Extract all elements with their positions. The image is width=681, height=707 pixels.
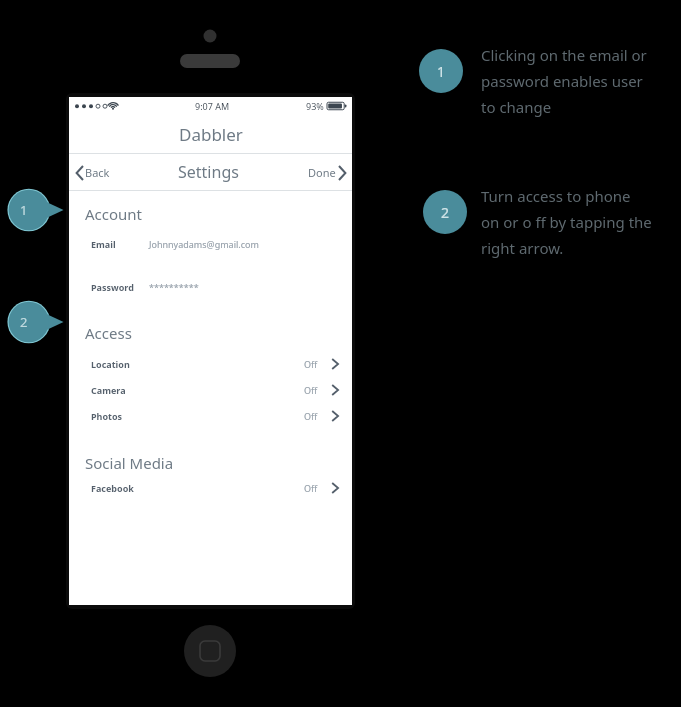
button[interactable]: Back — [79, 161, 116, 184]
button[interactable]: Facebook — [69, 475, 352, 501]
staticText: 1 — [437, 62, 446, 81]
staticText: Account — [85, 204, 143, 224]
staticText: 2 — [441, 203, 450, 222]
staticText: 9:07 AM — [195, 100, 230, 112]
button[interactable]: Password — [69, 279, 352, 295]
staticText: password enables user — [481, 71, 643, 91]
staticText: Settings — [178, 161, 239, 183]
button[interactable]: 1 — [419, 49, 463, 93]
button[interactable]: Location — [69, 351, 352, 377]
staticText: 1 — [20, 201, 28, 219]
staticText: right arrow. — [481, 238, 564, 258]
staticText: on or o ff by tapping the — [481, 212, 652, 232]
staticText: Password — [91, 281, 134, 293]
button[interactable]: Camera — [69, 377, 352, 403]
staticText: Clicking on the email or — [481, 45, 647, 65]
staticText: Off — [304, 384, 318, 396]
staticText: Social Media — [85, 453, 174, 473]
staticText: Location — [91, 358, 130, 370]
staticText: Email — [91, 238, 116, 250]
staticText: Off — [304, 410, 318, 422]
staticText: Off — [304, 482, 318, 494]
staticText: 93% — [306, 100, 324, 112]
button[interactable]: Done — [302, 161, 342, 184]
staticText: Off — [304, 358, 318, 370]
staticText: Facebook — [91, 482, 134, 494]
staticText: to change — [481, 97, 552, 117]
staticText: ********** — [149, 281, 199, 293]
staticText: Access — [85, 323, 132, 343]
staticText: Johnnyadams@gmail.com — [149, 238, 259, 250]
staticText: Back — [85, 165, 110, 180]
button[interactable]: Home — [184, 625, 236, 677]
button[interactable]: Forward — [332, 162, 352, 184]
staticText: Photos — [91, 410, 123, 422]
button[interactable]: Back — [70, 162, 90, 184]
staticText: Done — [308, 165, 336, 180]
button[interactable]: Email — [69, 236, 352, 252]
staticText: Dabbler — [179, 123, 243, 146]
staticText: 2 — [20, 313, 28, 331]
staticText: Camera — [91, 384, 126, 396]
button[interactable]: 2 — [423, 190, 467, 234]
staticText: Turn access to phone — [481, 186, 631, 206]
button[interactable]: Photos — [69, 403, 352, 429]
